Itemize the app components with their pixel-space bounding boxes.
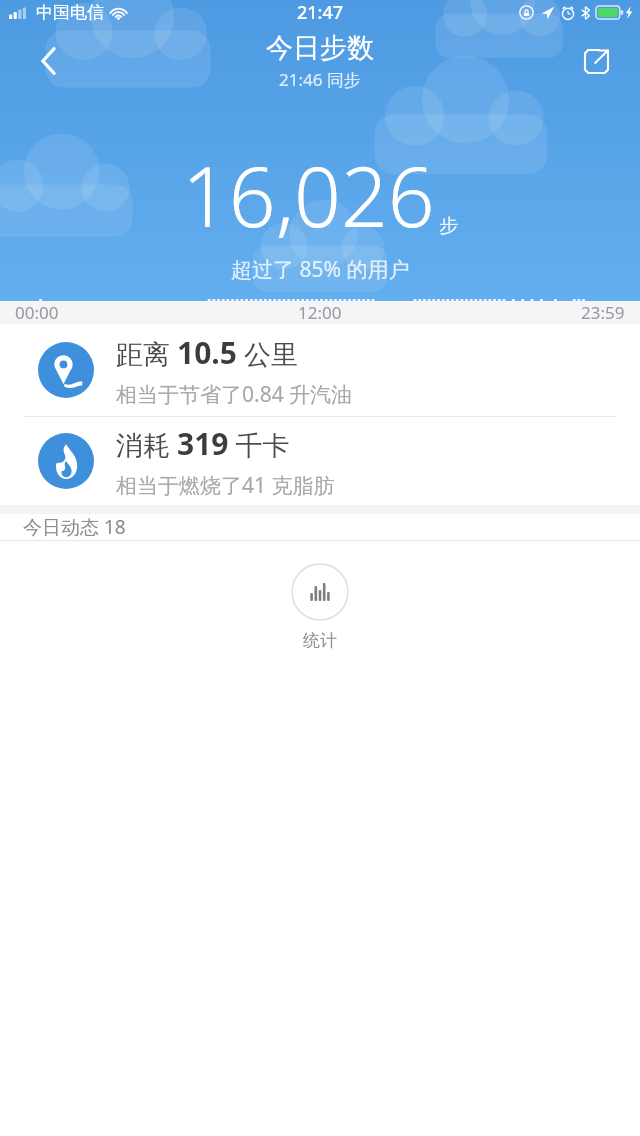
staticText: 距离 10.5 公里 bbox=[116, 332, 298, 373]
button[interactable]: 距离 10.5 公里 bbox=[0, 324, 640, 416]
staticText: 12:00 bbox=[298, 301, 342, 324]
other: 统计 bbox=[291, 563, 349, 621]
staticText: 16,026 bbox=[182, 139, 435, 251]
staticText: 步 bbox=[439, 214, 458, 238]
staticText: 今日步数 bbox=[266, 31, 374, 65]
button[interactable]: 统计 bbox=[283, 555, 357, 659]
staticText: 相当于燃烧了41 克脂肪 bbox=[116, 471, 335, 500]
staticText: 21:47 bbox=[297, 0, 344, 25]
staticText: 23:59 bbox=[581, 301, 625, 324]
button[interactable]: 分享 bbox=[572, 37, 620, 85]
staticText: 相当于节省了0.84 升汽油 bbox=[116, 380, 353, 409]
button[interactable]: 返回 bbox=[22, 34, 76, 88]
staticText: 21:46 同步 bbox=[279, 68, 361, 91]
button[interactable]: 今日动态 18 bbox=[0, 514, 640, 540]
button[interactable]: 消耗 319 千卡 bbox=[0, 417, 640, 505]
staticText: 中国电信 bbox=[36, 2, 104, 23]
staticText: 消耗 319 千卡 bbox=[116, 423, 290, 464]
staticText: 统计 bbox=[303, 630, 337, 651]
staticText: 今日动态 18 bbox=[23, 514, 126, 540]
staticText: 超过了 85% 的用户 bbox=[231, 255, 410, 284]
staticText: 00:00 bbox=[15, 301, 59, 324]
